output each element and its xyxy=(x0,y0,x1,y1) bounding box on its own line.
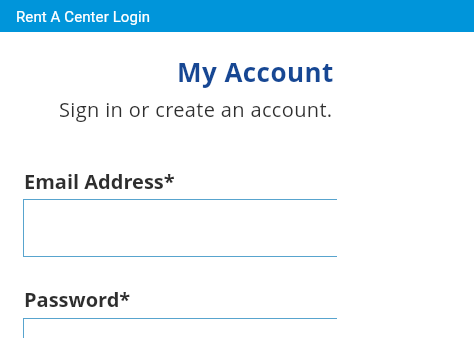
staticText: Email Address* xyxy=(24,168,175,195)
button[interactable]: Rent A Center Login xyxy=(0,0,474,32)
staticText: Rent A Center Login xyxy=(16,8,151,26)
button[interactable]: Email Address input xyxy=(23,199,337,257)
button[interactable]: Password input xyxy=(23,318,337,338)
staticText: My Account xyxy=(177,54,334,89)
staticText: Sign in or create an account. xyxy=(59,96,333,123)
staticText: Password* xyxy=(24,286,131,313)
